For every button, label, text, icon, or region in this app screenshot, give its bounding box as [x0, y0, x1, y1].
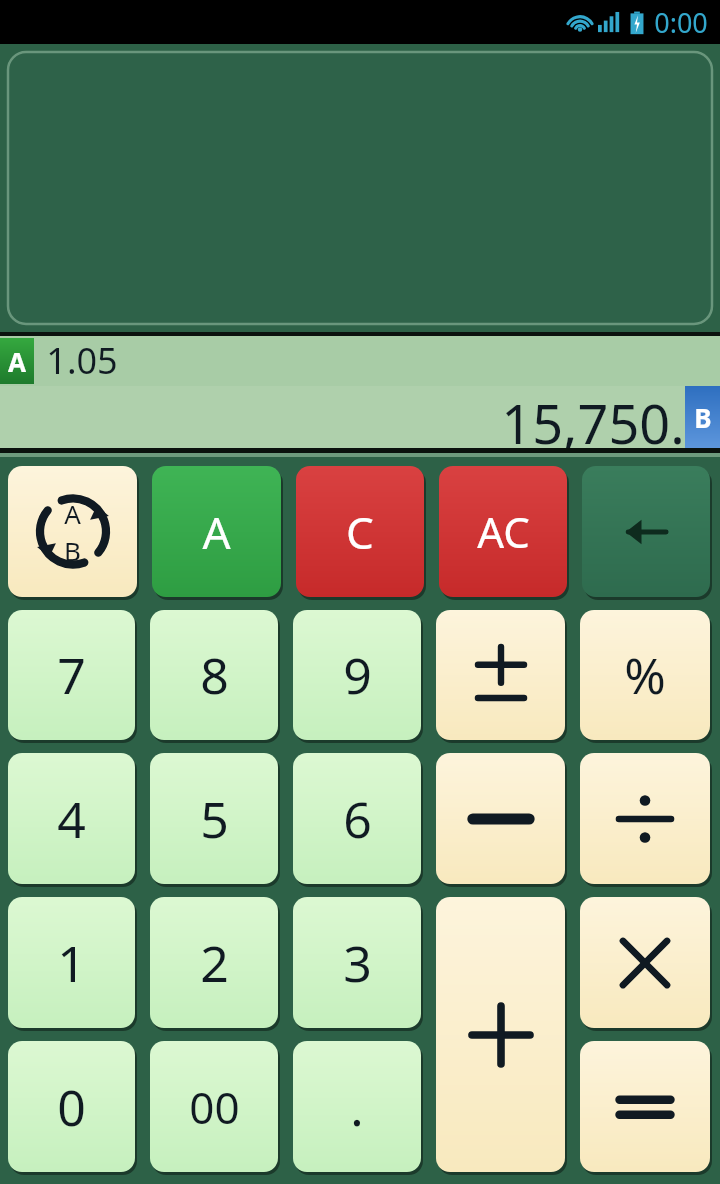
staticText: B — [64, 533, 81, 568]
staticText: A — [64, 496, 81, 531]
button[interactable]: 7 — [8, 610, 137, 743]
staticText: B — [694, 400, 712, 435]
staticText: . — [350, 1073, 364, 1141]
button[interactable]: 0 — [8, 1041, 137, 1175]
button[interactable]: Backspace — [582, 466, 712, 600]
button[interactable]: Percent — [580, 610, 712, 743]
button[interactable]: 3 — [293, 897, 423, 1031]
button[interactable]: Minus — [436, 753, 567, 887]
button[interactable]: 00 — [150, 1041, 280, 1175]
button[interactable]: 8 — [150, 610, 280, 743]
button[interactable]: 5 — [150, 753, 280, 887]
button[interactable]: Plus minus — [436, 610, 567, 743]
staticText: 00 — [189, 1077, 240, 1137]
staticText: 9 — [343, 641, 372, 709]
button[interactable]: AC — [439, 466, 569, 600]
staticText: 7 — [57, 641, 86, 709]
staticText: 1 — [57, 929, 86, 997]
staticText: 2 — [200, 929, 229, 997]
staticText: 5 — [200, 785, 229, 853]
staticText: 15,750. — [501, 386, 685, 448]
staticText: 1.05 — [46, 336, 118, 385]
staticText: 0:00 — [654, 4, 708, 41]
button[interactable]: Equals — [580, 1041, 712, 1175]
staticText: % — [624, 641, 666, 709]
button[interactable]: Multiply — [580, 897, 712, 1031]
staticText: 4 — [57, 785, 86, 853]
staticText: A — [8, 344, 26, 379]
button[interactable]: Divide — [580, 753, 712, 887]
staticText: 6 — [343, 785, 372, 853]
staticText: 3 — [343, 929, 372, 997]
button[interactable]: Plus — [436, 897, 567, 1175]
button[interactable]: 9 — [293, 610, 423, 743]
staticText: A — [202, 502, 231, 562]
button[interactable]: A — [152, 466, 283, 600]
button[interactable]: . — [293, 1041, 423, 1175]
button[interactable]: Swap A B — [8, 466, 139, 600]
button[interactable]: 2 — [150, 897, 280, 1031]
button[interactable]: 4 — [8, 753, 137, 887]
staticText: C — [346, 502, 374, 562]
staticText: 0 — [57, 1073, 86, 1141]
staticText: AC — [477, 503, 530, 560]
staticText: 8 — [200, 641, 229, 709]
button[interactable]: C — [296, 466, 426, 600]
button[interactable]: 6 — [293, 753, 423, 887]
button[interactable]: 1 — [8, 897, 137, 1031]
